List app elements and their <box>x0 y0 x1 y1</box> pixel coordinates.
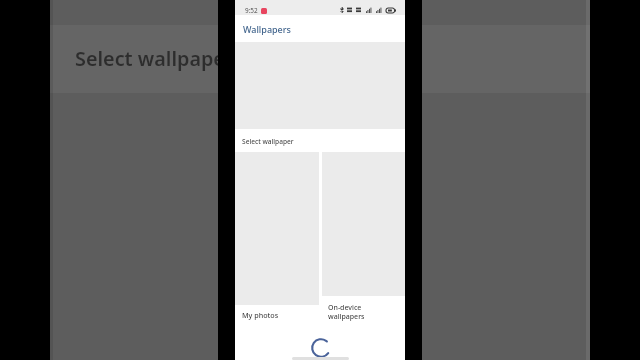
staticText: 9:52 <box>245 6 258 15</box>
other: Loading <box>311 338 331 358</box>
staticText: Select wallpaper <box>242 137 294 146</box>
staticText: Wallpapers <box>243 23 291 35</box>
button[interactable]: On-device wallpapers <box>322 152 405 326</box>
button[interactable]: Wallpapers <box>235 15 405 42</box>
staticText: Select wallpaper <box>75 45 234 72</box>
button[interactable]: My photos <box>235 152 319 326</box>
staticText: On-device wallpapers <box>328 303 365 321</box>
staticText: My photos <box>242 310 279 320</box>
